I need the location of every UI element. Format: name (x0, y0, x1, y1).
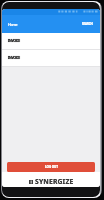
button[interactable]: INVOICE (2, 50, 100, 66)
staticText: INVOICE (8, 38, 20, 43)
staticText: Home (8, 22, 18, 27)
button[interactable]: SEARCH (82, 22, 93, 26)
button[interactable]: LOG OUT (7, 162, 95, 172)
staticText: LOG OUT (45, 165, 58, 169)
staticText: SYNERGIZE (35, 177, 74, 186)
button[interactable]: INVOICE (2, 33, 100, 49)
staticText: SEARCH (82, 22, 93, 26)
button[interactable]: Home (8, 22, 18, 27)
staticText: INVOICE (8, 55, 20, 60)
